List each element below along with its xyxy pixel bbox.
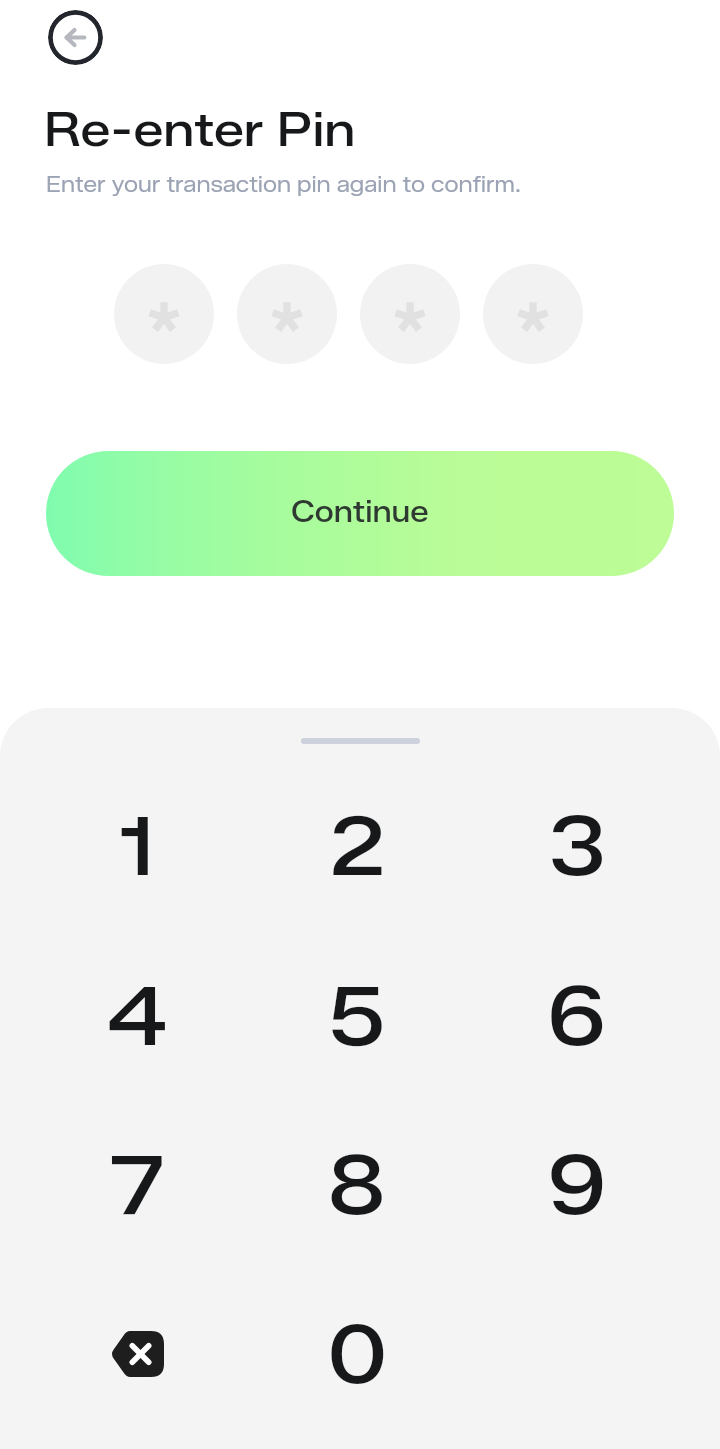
button[interactable]: Back bbox=[48, 10, 103, 65]
staticText: 5 bbox=[328, 966, 386, 1066]
button[interactable]: 7 bbox=[57, 1105, 217, 1265]
button[interactable]: 1 bbox=[57, 766, 217, 926]
staticText: 6 bbox=[547, 966, 607, 1066]
staticText: 7 bbox=[110, 1135, 164, 1235]
button[interactable]: 9 bbox=[497, 1105, 657, 1265]
button[interactable]: 4 bbox=[57, 936, 217, 1096]
button[interactable]: Backspace bbox=[57, 1274, 217, 1434]
staticText: 9 bbox=[547, 1135, 607, 1235]
button[interactable]: 2 bbox=[277, 766, 437, 926]
staticText: 3 bbox=[548, 796, 607, 896]
staticText: 4 bbox=[107, 966, 168, 1066]
staticText: 8 bbox=[327, 1135, 387, 1235]
staticText: 1 bbox=[118, 796, 156, 896]
staticText: Enter your transaction pin again to conf… bbox=[46, 171, 521, 198]
staticText: Continue bbox=[291, 494, 429, 530]
staticText: 2 bbox=[329, 796, 386, 896]
button[interactable]: 3 bbox=[497, 766, 657, 926]
button[interactable]: Continue bbox=[46, 451, 674, 576]
staticText: 0 bbox=[327, 1304, 388, 1404]
button[interactable]: 8 bbox=[277, 1105, 437, 1265]
button[interactable]: 5 bbox=[277, 936, 437, 1096]
other: Backspace bbox=[110, 1331, 164, 1377]
button[interactable]: 6 bbox=[497, 936, 657, 1096]
staticText: Re-enter Pin bbox=[44, 100, 356, 158]
button[interactable]: 0 bbox=[277, 1274, 437, 1434]
